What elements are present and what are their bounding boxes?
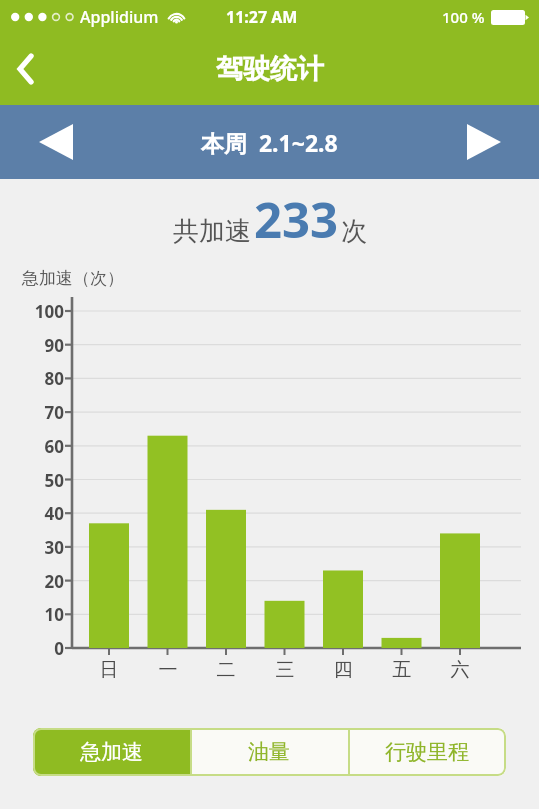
staticText: 行驶里程	[385, 739, 469, 765]
staticText: 10	[20, 603, 64, 626]
staticText: 日	[89, 658, 129, 682]
staticText: 30	[20, 536, 64, 559]
staticText: 共加速	[173, 215, 251, 248]
staticText: 四	[323, 658, 363, 682]
staticText: 40	[20, 502, 64, 525]
button[interactable]: 急加速	[33, 728, 190, 776]
button[interactable]: 油量	[190, 728, 348, 776]
staticText: 0	[20, 637, 64, 660]
staticText: 三	[265, 658, 305, 682]
button[interactable]: 行驶里程	[348, 728, 506, 776]
staticText: 100	[20, 300, 64, 323]
staticText: 次	[341, 215, 367, 248]
staticText: 驾驶统计	[216, 52, 324, 86]
staticText: 急加速（次）	[22, 268, 124, 289]
staticText: 二	[206, 658, 246, 682]
staticText: 233	[254, 186, 339, 253]
staticText: 本周 2.1~2.8	[201, 127, 338, 158]
staticText: 50	[20, 469, 64, 492]
button[interactable]: Back	[0, 43, 52, 95]
staticText: 11:27 AM	[226, 6, 298, 28]
button[interactable]: Next week	[458, 116, 510, 168]
staticText: 急加速	[80, 739, 143, 765]
staticText: 60	[20, 435, 64, 458]
staticText: 100 %	[442, 7, 485, 27]
staticText: 20	[20, 570, 64, 593]
button[interactable]: Previous week	[30, 116, 82, 168]
staticText: Applidium	[80, 6, 159, 28]
staticText: 80	[20, 367, 64, 390]
staticText: 五	[382, 658, 422, 682]
staticText: 90	[20, 334, 64, 357]
staticText: 70	[20, 401, 64, 424]
staticText: 一	[148, 658, 188, 682]
staticText: 油量	[248, 739, 290, 765]
staticText: 六	[440, 658, 480, 682]
